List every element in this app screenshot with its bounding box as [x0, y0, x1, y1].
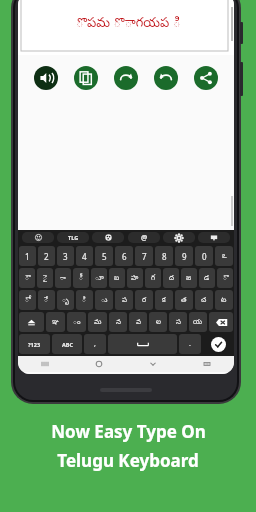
staticText: ొ పమ ొ ాగయప ి	[76, 13, 181, 33]
button[interactable]	[209, 312, 233, 332]
staticText: 8	[162, 251, 167, 262]
staticText: ఽ	[222, 251, 227, 262]
button[interactable]: ల	[149, 312, 167, 332]
staticText: 0	[202, 251, 207, 262]
button[interactable]: 0	[195, 246, 213, 266]
button[interactable]: Language	[57, 232, 89, 243]
staticText: న	[116, 318, 121, 327]
button[interactable]: ట	[215, 290, 233, 310]
button[interactable]: Keyboard	[180, 356, 234, 372]
button[interactable]	[108, 334, 177, 354]
button[interactable]: Share	[194, 66, 218, 90]
staticText: బ	[114, 274, 120, 283]
button[interactable]: హ	[127, 268, 143, 288]
button[interactable]: ౌ	[19, 268, 35, 288]
button[interactable]: 7	[135, 246, 153, 266]
staticText: ీ	[79, 274, 84, 283]
button[interactable]: Home	[72, 356, 126, 372]
staticText: ం	[73, 318, 81, 327]
button[interactable]: 6	[115, 246, 133, 266]
staticText: ి	[82, 296, 87, 305]
button[interactable]: క	[155, 290, 173, 310]
button[interactable]: ృ	[57, 290, 74, 310]
button[interactable]: ఞ	[46, 312, 65, 332]
button[interactable]: న	[109, 312, 127, 332]
staticText: ల	[156, 318, 161, 327]
button[interactable]: Settings	[163, 232, 195, 243]
button[interactable]: జ	[181, 268, 197, 288]
staticText: ృ	[62, 296, 69, 305]
button[interactable]: 3	[57, 246, 74, 266]
button[interactable]: Enter	[203, 334, 233, 354]
button[interactable]: ర	[135, 290, 153, 310]
button[interactable]: .	[179, 334, 201, 354]
button[interactable]: ూ	[91, 268, 107, 288]
button[interactable]: చ	[195, 290, 213, 310]
button[interactable]: మ	[88, 312, 107, 332]
staticText: మ	[94, 318, 102, 327]
button[interactable]: ద	[163, 268, 179, 288]
staticText: య	[193, 318, 203, 327]
button[interactable]: Speak	[34, 66, 58, 90]
button[interactable]: Back	[126, 356, 180, 372]
button[interactable]: 9	[175, 246, 193, 266]
button[interactable]: ీ	[73, 268, 89, 288]
button[interactable]: ,	[84, 334, 106, 354]
staticText: ర	[142, 296, 147, 305]
button[interactable]: At	[128, 232, 160, 243]
button[interactable]: Recents	[18, 356, 72, 372]
button[interactable]: Theme	[92, 232, 124, 243]
staticText: 1	[25, 251, 30, 262]
button[interactable]: బ	[109, 268, 125, 288]
staticText: క	[162, 296, 166, 305]
button[interactable]	[19, 312, 44, 332]
button[interactable]: డ	[199, 268, 215, 288]
button[interactable]: ే	[38, 290, 55, 310]
button[interactable]: 4	[76, 246, 93, 266]
button[interactable]: ?123	[19, 334, 50, 354]
staticText: హ	[131, 274, 139, 283]
staticText: జ	[186, 274, 192, 283]
staticText: ,	[94, 339, 96, 349]
staticText: వ	[136, 318, 141, 327]
staticText: స	[176, 318, 181, 327]
staticText: Telugu Keyboard	[57, 449, 199, 472]
staticText: 3	[63, 251, 68, 262]
button[interactable]: ా	[55, 268, 71, 288]
staticText: ా	[60, 274, 66, 283]
button[interactable]: Emoji	[22, 232, 54, 243]
staticText: 2	[44, 251, 49, 262]
staticText: ఞ	[52, 318, 59, 327]
staticText: ద	[169, 274, 174, 283]
staticText: ?123	[28, 341, 41, 348]
button[interactable]: Redo	[114, 66, 138, 90]
button[interactable]: ై	[37, 268, 53, 288]
button[interactable]: 2	[38, 246, 55, 266]
button[interactable]: Hide keyboard	[198, 232, 230, 243]
button[interactable]: య	[189, 312, 207, 332]
button[interactable]: ి	[76, 290, 93, 310]
staticText: గ	[151, 274, 156, 283]
button[interactable]: ABC	[52, 334, 82, 354]
button[interactable]: గ	[145, 268, 161, 288]
button[interactable]: ం	[67, 312, 86, 332]
button[interactable]: ఽ	[215, 246, 233, 266]
button[interactable]: Copy	[74, 66, 98, 90]
button[interactable]: ో	[19, 290, 36, 310]
staticText: TLG	[68, 234, 79, 241]
button[interactable]: Undo	[154, 66, 178, 90]
button[interactable]: 5	[95, 246, 113, 266]
staticText: ABC	[62, 341, 73, 348]
button[interactable]: వ	[129, 312, 147, 332]
staticText: 9	[182, 251, 187, 262]
button[interactable]: స	[169, 312, 187, 332]
button[interactable]: త	[175, 290, 193, 310]
button[interactable]: ొ	[217, 268, 233, 288]
button[interactable]: ు	[95, 290, 113, 310]
staticText: ప	[122, 296, 127, 305]
button[interactable]: ప	[115, 290, 133, 310]
staticText: ట	[221, 296, 227, 305]
button[interactable]: 8	[155, 246, 173, 266]
button[interactable]: 1	[19, 246, 36, 266]
staticText: చ	[201, 296, 207, 305]
